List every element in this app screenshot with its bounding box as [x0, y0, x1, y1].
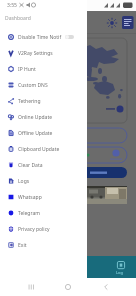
button[interactable]: Home [61, 280, 75, 294]
staticText: V2Ray Settings [18, 50, 53, 57]
staticText: Offline Update [18, 130, 53, 137]
button[interactable]: Disable Time Notif [0, 29, 87, 45]
button[interactable]: Clear Data [0, 157, 87, 173]
button[interactable]: Custom DNS [0, 77, 87, 93]
staticText: 3:55 [7, 2, 17, 9]
staticText: Telegram [18, 210, 40, 217]
staticText: Logs [18, 178, 30, 185]
staticText: Log [116, 270, 123, 275]
staticText: Dashboard [5, 15, 31, 22]
button[interactable]: Clipboard Update [0, 141, 87, 157]
button[interactable]: Log tab [0, 256, 136, 278]
button[interactable]: Back [99, 280, 113, 294]
staticText: Disable Time Notif [18, 34, 62, 41]
button[interactable]: Logs [0, 173, 87, 189]
button[interactable]: Recents [24, 280, 38, 294]
staticText: Privacy policy [18, 226, 50, 233]
staticText: Custom DNS [18, 82, 48, 89]
staticText: Tethering [18, 98, 41, 105]
staticText: Clipboard Update [18, 146, 60, 153]
staticText: Whatsapp [18, 194, 42, 201]
staticText: IP Hunt [18, 66, 36, 73]
button[interactable]: Exit [0, 237, 87, 253]
button[interactable]: IP Hunt [0, 61, 87, 77]
button[interactable]: Telegram [0, 205, 87, 221]
button[interactable]: Online Update [0, 109, 87, 125]
button[interactable]: V2Ray Settings [0, 45, 87, 61]
button[interactable]: Whatsapp [0, 189, 87, 205]
button[interactable]: Privacy policy [0, 221, 87, 237]
staticText: Clear Data [18, 162, 43, 169]
button[interactable]: Tethering [0, 93, 87, 109]
staticText: Online Update [18, 114, 53, 121]
button[interactable]: Offline Update [0, 125, 87, 141]
staticText: Exit [18, 242, 27, 249]
